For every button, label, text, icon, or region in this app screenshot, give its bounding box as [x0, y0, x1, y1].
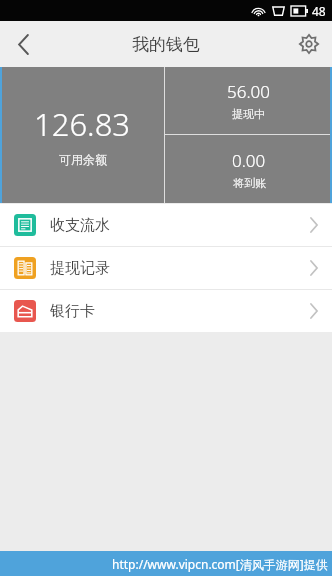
button[interactable]: 0.00: [165, 135, 332, 203]
staticText: 可用余额: [59, 152, 107, 167]
staticText: 0.00: [232, 149, 266, 172]
button[interactable]: 56.00: [165, 67, 332, 134]
button[interactable]: 126.83: [0, 67, 164, 203]
button[interactable]: Settings: [286, 21, 332, 67]
staticText: 我的钱包: [132, 34, 200, 55]
staticText: 126.83: [34, 103, 131, 145]
staticText: 56.00: [227, 80, 270, 103]
button[interactable]: 银行卡: [0, 290, 332, 332]
staticText: 提现中: [232, 107, 265, 121]
staticText: 48: [312, 3, 326, 19]
button[interactable]: 收支流水: [0, 204, 332, 246]
staticText: 将到账: [233, 176, 266, 190]
staticText: 收支流水: [50, 216, 110, 235]
staticText: 提现记录: [50, 259, 110, 278]
button[interactable]: 提现记录: [0, 247, 332, 289]
button[interactable]: Back: [0, 21, 46, 67]
staticText: http://www.vipcn.com[清风手游网]提供: [112, 556, 328, 572]
staticText: 银行卡: [50, 302, 95, 321]
